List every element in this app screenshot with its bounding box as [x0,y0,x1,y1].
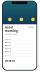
staticText: Item name [5,38,11,40]
staticText: Item name [5,45,11,46]
staticText: Good morning [5,26,18,33]
staticText: Item name [5,51,11,53]
staticText: Recent [5,59,15,62]
staticText: Item name [5,54,11,56]
staticText: Item name [5,41,11,43]
staticText: Item name [5,48,11,50]
staticText: Here is your week [5,33,18,35]
staticText: 9:41 [0,1,3,5]
